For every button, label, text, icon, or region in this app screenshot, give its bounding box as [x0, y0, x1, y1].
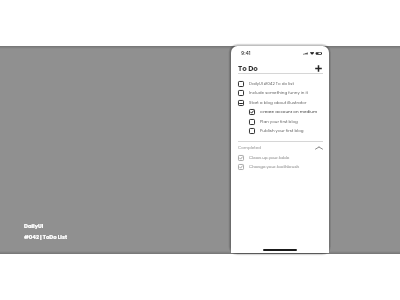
staticText: #042 | ToDo List — [24, 233, 68, 240]
button[interactable]: Clean up your table — [231, 153, 329, 162]
button[interactable]: Plan your first blog — [231, 117, 329, 126]
button[interactable]: Publish your first blog — [231, 126, 329, 135]
button[interactable]: Start a blog about illustrator — [231, 98, 329, 107]
staticText: 9:41 — [241, 50, 251, 57]
staticText: To Do — [238, 64, 258, 74]
staticText: Plan your first blog — [260, 119, 298, 125]
button[interactable]: DailyUI #042 To do list — [231, 79, 329, 88]
staticText: Start a blog about illustrator — [249, 100, 307, 106]
staticText: Create account on medium — [260, 109, 318, 115]
staticText: Clean up your table — [249, 155, 290, 161]
staticText: Completed — [238, 145, 262, 151]
button[interactable]: Change your toothbrush — [231, 162, 329, 171]
button[interactable]: Create account on medium — [231, 107, 329, 116]
button[interactable]: Add task — [314, 64, 323, 73]
staticText: DailyUI — [24, 222, 44, 229]
button[interactable]: Completed — [231, 143, 329, 152]
button[interactable]: Include something funny in it — [231, 88, 329, 97]
staticText: DailyUI #042 To do list — [249, 81, 294, 87]
staticText: Include something funny in it — [249, 90, 309, 96]
staticText: Change your toothbrush — [249, 164, 300, 170]
staticText: Publish your first blog — [260, 128, 304, 134]
